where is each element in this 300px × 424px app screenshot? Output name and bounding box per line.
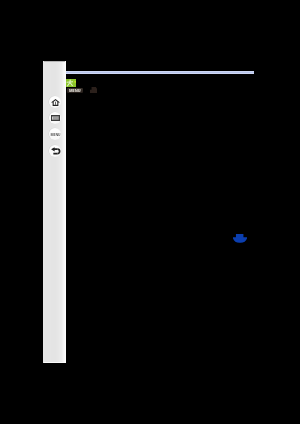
staticText: MENU <box>50 132 61 136</box>
button[interactable]: Home <box>48 95 61 108</box>
button[interactable]: Recent apps <box>48 111 61 124</box>
button[interactable]: Back <box>48 144 61 157</box>
staticText: MENU <box>69 88 81 93</box>
button[interactable]: MENU <box>67 88 83 93</box>
button[interactable]: Menu <box>48 127 61 140</box>
